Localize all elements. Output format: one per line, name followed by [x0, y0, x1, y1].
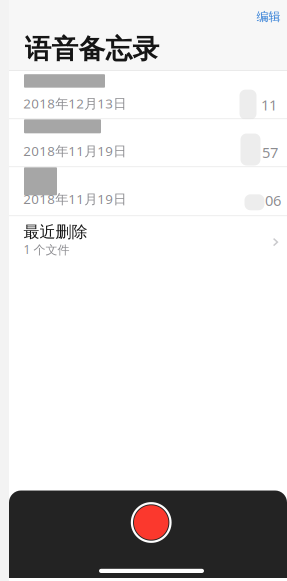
staticText: 06	[265, 191, 281, 210]
staticText: 2018年12月13日	[23, 94, 126, 112]
staticText: 编辑	[256, 9, 280, 24]
staticText: 最近删除	[24, 222, 88, 242]
staticText: 2018年11月19日	[23, 142, 126, 160]
button[interactable]: 2018年11月19日	[0, 119, 287, 166]
button[interactable]: 最近删除	[0, 216, 287, 264]
staticText: 2018年11月19日	[23, 190, 126, 208]
button[interactable]: 2018年12月13日	[0, 71, 287, 118]
staticText: 1 个文件	[24, 241, 70, 257]
staticText: 11	[261, 95, 277, 115]
staticText: 57	[262, 143, 278, 162]
staticText: 语音备忘录	[24, 33, 159, 66]
button[interactable]: Record	[129, 500, 173, 544]
button[interactable]: 编辑	[250, 3, 286, 30]
button[interactable]: 2018年11月19日	[0, 167, 287, 215]
